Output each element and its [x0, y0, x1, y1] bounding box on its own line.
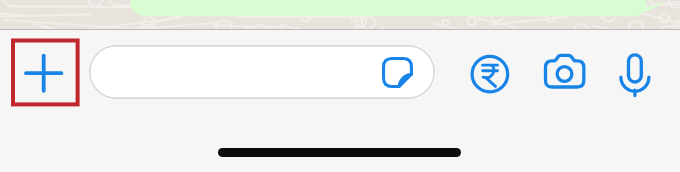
- button[interactable]: Stickers: [382, 57, 413, 88]
- button[interactable]: Voice message: [616, 50, 654, 100]
- button[interactable]: Payments: [468, 52, 512, 96]
- button[interactable]: Stickers: [89, 45, 435, 99]
- button[interactable]: Camera: [540, 50, 588, 92]
- button[interactable]: Attach: [12, 40, 78, 105]
